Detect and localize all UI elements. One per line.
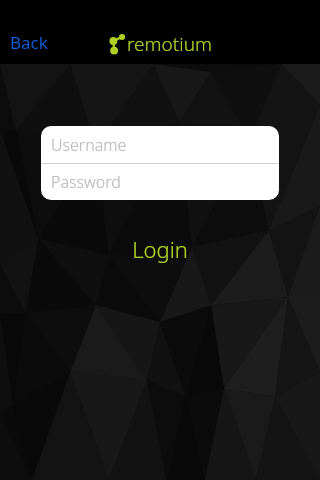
staticText: Login bbox=[132, 234, 188, 264]
staticText: Password bbox=[51, 171, 121, 193]
button[interactable]: Password bbox=[41, 164, 279, 200]
button[interactable]: Username bbox=[41, 126, 279, 163]
staticText: Username bbox=[51, 134, 127, 156]
button[interactable]: Login bbox=[0, 228, 320, 270]
button[interactable]: Back bbox=[6, 29, 52, 56]
staticText: Back bbox=[10, 31, 48, 54]
staticText: remotium bbox=[127, 31, 212, 57]
